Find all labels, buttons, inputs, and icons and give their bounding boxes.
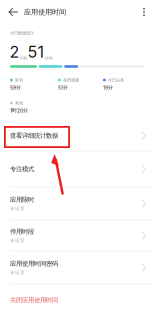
staticText: 在线视频 (63, 77, 79, 83)
staticText: 59分 (10, 84, 21, 91)
staticText: 应用使用时间 (24, 7, 66, 17)
staticText: 今日数据统计 (10, 30, 34, 36)
button[interactable]: 停用时段 (0, 220, 155, 251)
staticText: 今日头条 (108, 77, 124, 83)
staticText: 未设置 (10, 238, 25, 243)
staticText: 应用限时 (10, 196, 34, 204)
staticText: 分钟 (44, 55, 52, 61)
staticText: 关闭应用使用时间 (10, 296, 58, 304)
button[interactable]: More options (138, 4, 150, 20)
staticText: 查看详细统计数据 (10, 131, 58, 140)
button[interactable]: 查看详细统计数据 (0, 120, 155, 151)
staticText: 51分 (58, 84, 68, 91)
staticText: 应用使用时间密码 (10, 260, 58, 268)
button[interactable]: 应用限时 (0, 187, 155, 220)
staticText: 小时 (19, 55, 27, 61)
button[interactable]: 关闭应用使用时间 (10, 288, 145, 312)
staticText: 其他 (15, 100, 23, 106)
staticText: 影音 (15, 77, 23, 83)
button[interactable]: 应用使用时间密码 (0, 251, 155, 284)
staticText: 停用时段 (10, 228, 34, 236)
staticText: 19分 (103, 84, 113, 91)
staticText: 51 (27, 42, 44, 62)
staticText: 1时20分 (10, 107, 28, 114)
staticText: 2 (9, 42, 19, 62)
staticText: 未设置 (10, 270, 25, 275)
staticText: 未设置 (10, 206, 25, 211)
button[interactable]: 专注模式 (0, 151, 155, 187)
staticText: 专注模式 (10, 165, 34, 173)
button[interactable]: Back (4, 3, 22, 21)
